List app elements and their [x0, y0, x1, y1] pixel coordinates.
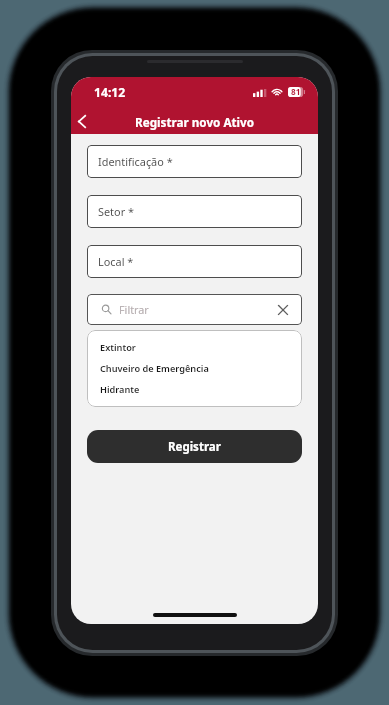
button[interactable]: Limpar filtro: [275, 302, 291, 318]
staticText: 14:12: [94, 84, 126, 101]
staticText: Hidrante: [100, 383, 140, 396]
button[interactable]: Local *: [87, 245, 302, 278]
staticText: Local *: [98, 254, 134, 269]
button[interactable]: Chuveiro de Emergência: [87, 358, 302, 379]
button[interactable]: Voltar: [71, 109, 94, 133]
staticText: Chuveiro de Emergência: [100, 362, 209, 375]
button[interactable]: Hidrante: [87, 379, 302, 400]
staticText: 81: [291, 86, 301, 97]
staticText: Registrar: [168, 439, 221, 455]
button[interactable]: Setor *: [87, 195, 302, 228]
staticText: Identificação *: [98, 154, 173, 169]
staticText: Filtrar: [119, 302, 149, 317]
staticText: Registrar novo Ativo: [135, 114, 255, 130]
button[interactable]: Filtrar: [87, 294, 302, 325]
button[interactable]: Extintor: [87, 337, 302, 358]
staticText: Extintor: [100, 341, 136, 354]
staticText: Setor *: [98, 204, 134, 219]
button[interactable]: Identificação *: [87, 145, 302, 178]
button[interactable]: Registrar: [87, 430, 302, 463]
